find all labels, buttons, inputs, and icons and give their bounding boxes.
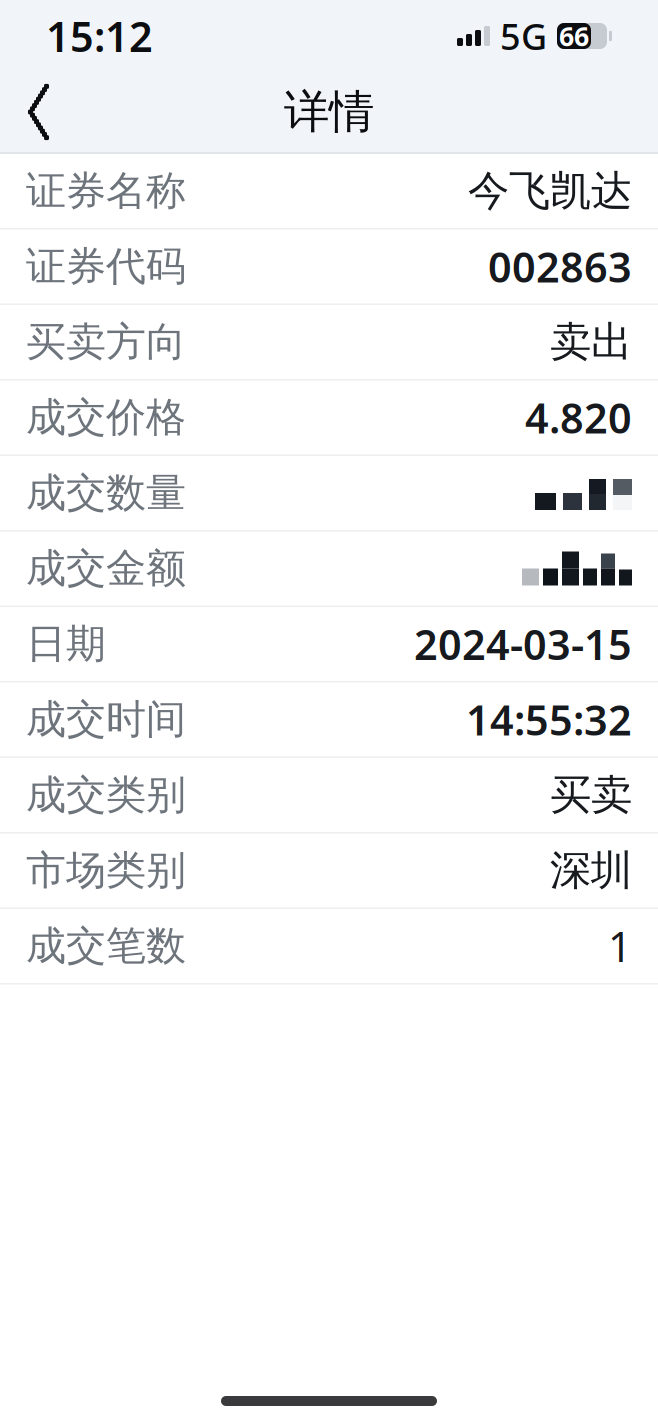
staticText: 日期 — [26, 619, 106, 668]
staticText: 市场类别 — [26, 846, 186, 895]
staticText: 成交数量 — [26, 468, 186, 517]
staticText: 成交金额 — [26, 544, 186, 593]
staticText: 证券代码 — [26, 242, 186, 291]
staticText: 15:12 — [46, 9, 153, 63]
staticText: 66 — [559, 18, 589, 54]
staticText: 详情 — [284, 84, 374, 140]
staticText: 1 — [608, 919, 632, 973]
staticText: 成交时间 — [26, 695, 186, 744]
staticText: 买卖 — [550, 770, 632, 820]
staticText: 5G — [500, 12, 547, 60]
staticText: 002863 — [488, 239, 632, 294]
staticText: 卖出 — [550, 317, 632, 367]
staticText: 成交类别 — [26, 770, 186, 819]
staticText: 买卖方向 — [26, 317, 186, 366]
staticText: 14:55:32 — [466, 692, 632, 747]
staticText: 4.820 — [525, 390, 632, 445]
staticText: 成交价格 — [26, 393, 186, 442]
staticText: 今飞凯达 — [468, 166, 632, 216]
staticText: 深圳 — [550, 845, 632, 896]
button[interactable]: Back — [0, 72, 80, 152]
staticText: 证券名称 — [26, 166, 186, 215]
staticText: 2024-03-15 — [414, 617, 632, 671]
staticText: 成交笔数 — [26, 921, 186, 970]
